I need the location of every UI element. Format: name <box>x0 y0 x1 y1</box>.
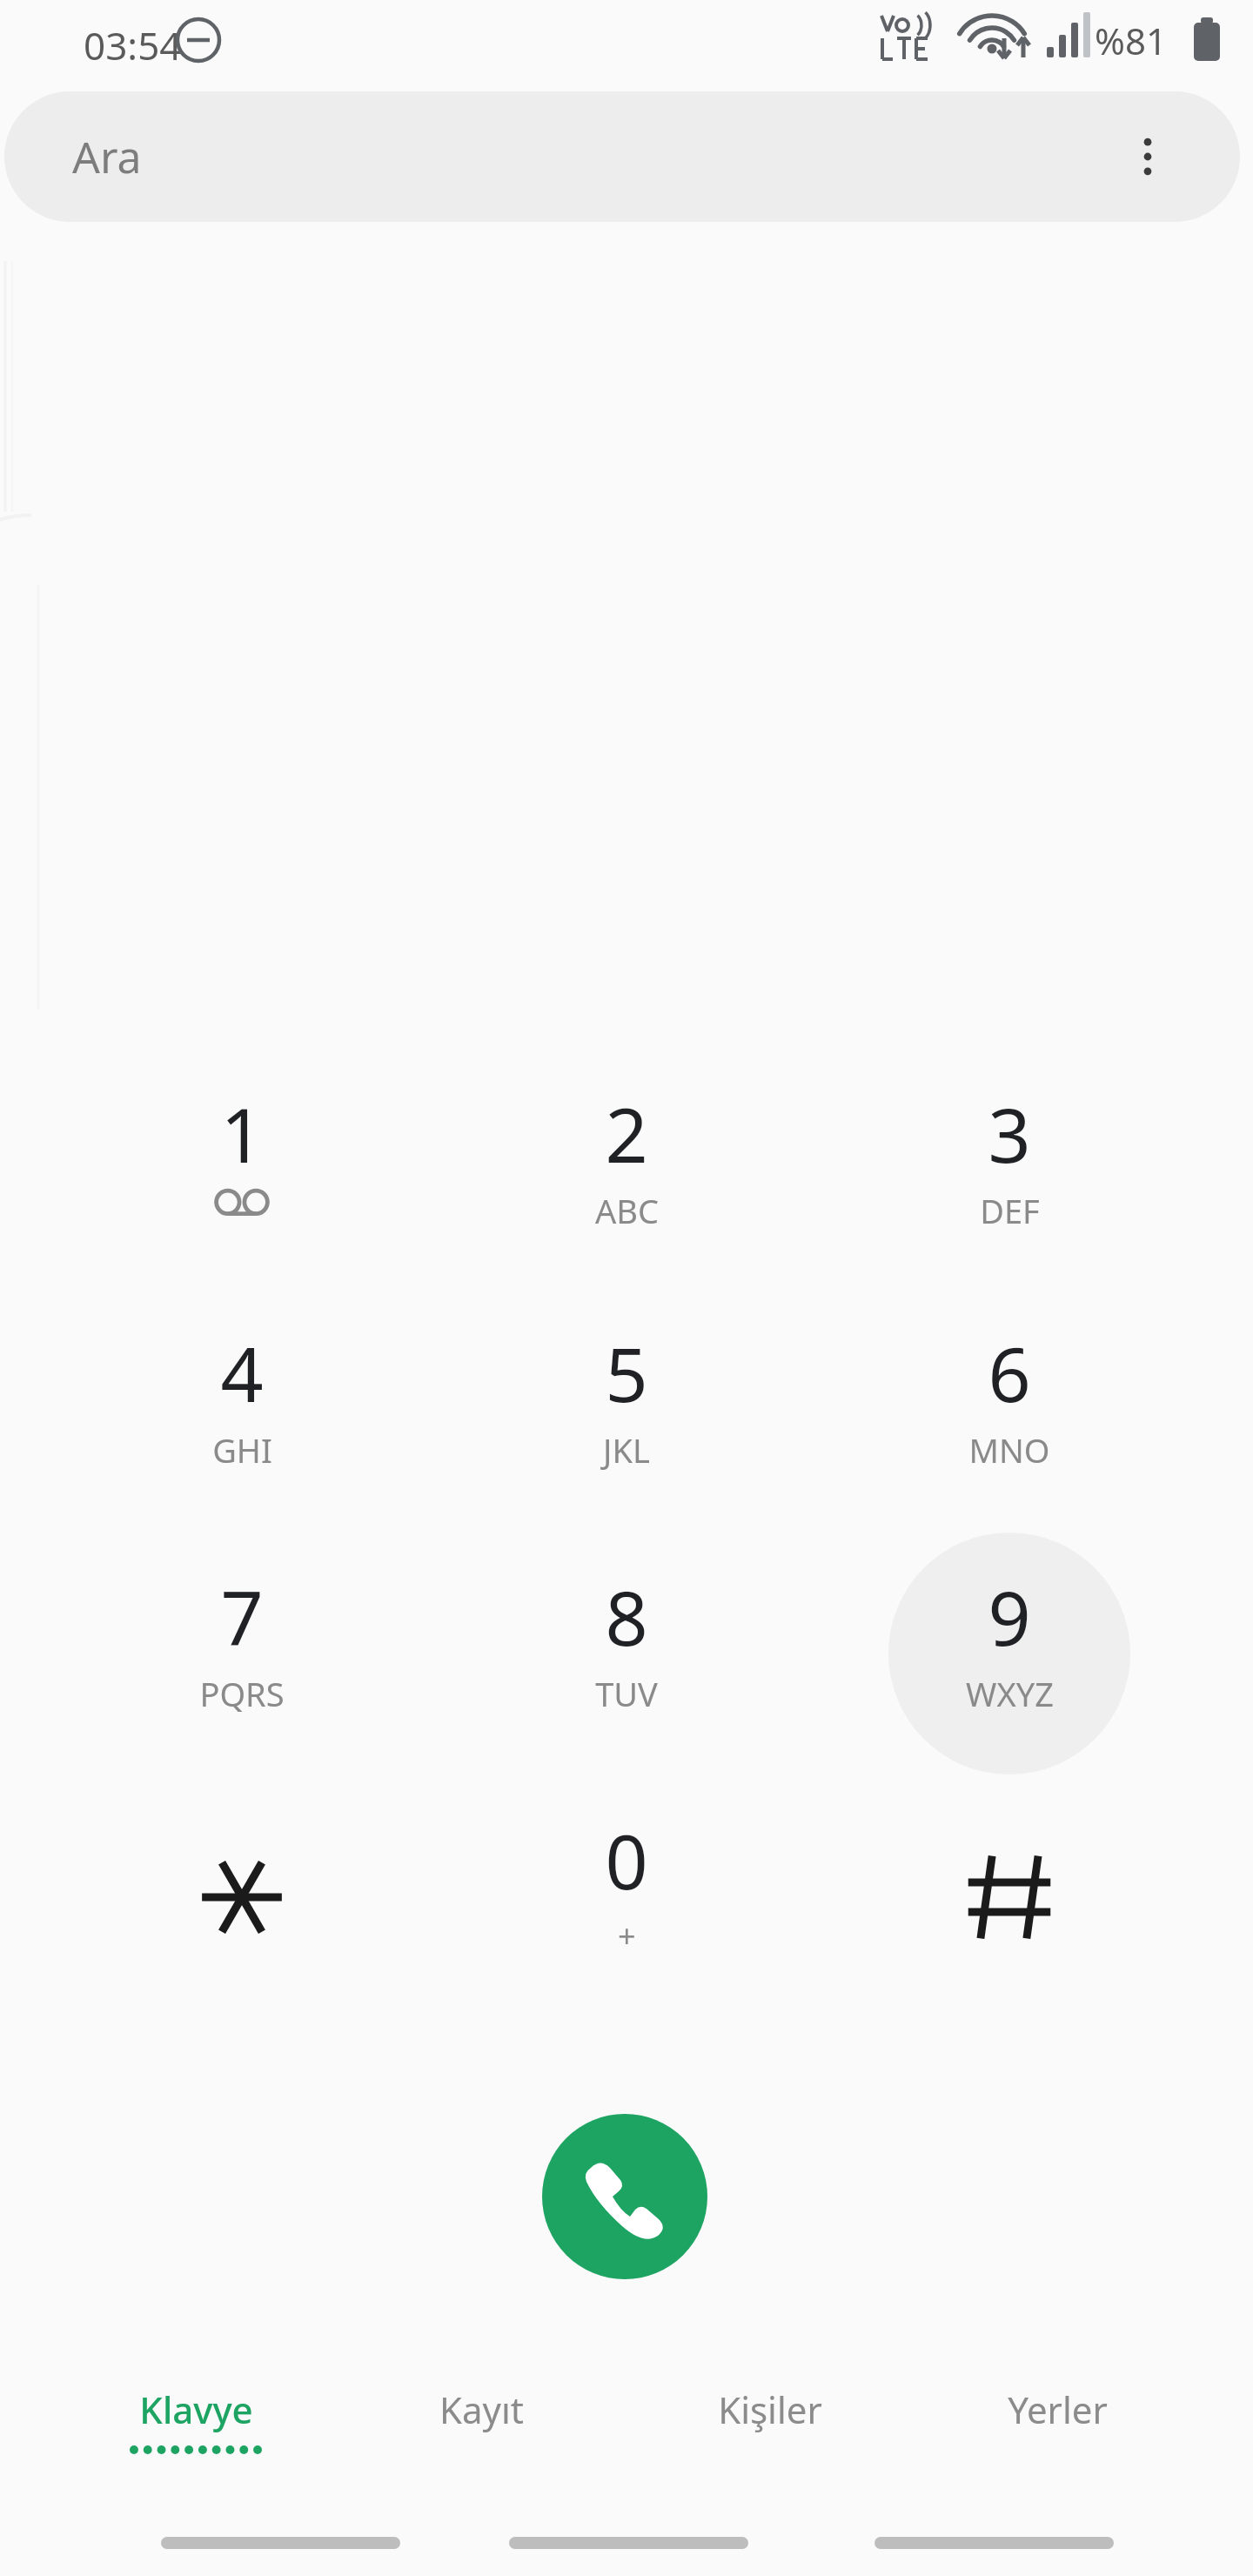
button[interactable]: 7 <box>121 1533 363 1774</box>
staticText: Kayıt <box>439 2385 524 2434</box>
button[interactable]: Klavye <box>65 2385 326 2498</box>
button[interactable]: Ara <box>4 91 1240 222</box>
staticText: 8 <box>605 1566 648 1667</box>
staticText: 9 <box>988 1566 1031 1667</box>
button[interactable]: 0 <box>506 1776 747 2018</box>
button[interactable]: 2 <box>506 1050 747 1291</box>
button[interactable]: Kişiler <box>640 2385 901 2498</box>
staticText: GHI <box>212 1427 272 1472</box>
button[interactable]: Yerler <box>927 2385 1188 2498</box>
staticText: ABC <box>595 1188 659 1233</box>
staticText: Klavye <box>139 2385 253 2434</box>
staticText: TUV <box>595 1671 658 1716</box>
staticText: 03:54 <box>84 19 182 71</box>
button[interactable]: More options <box>1106 115 1189 198</box>
button[interactable]: 4 <box>121 1289 363 1531</box>
staticText: 6 <box>988 1322 1031 1424</box>
staticText: MNO <box>968 1427 1050 1472</box>
button[interactable]: 8 <box>506 1533 747 1774</box>
button[interactable] <box>888 1776 1130 2018</box>
staticText: PQRS <box>199 1671 285 1716</box>
button[interactable]: 3 <box>888 1050 1130 1291</box>
button[interactable]: 1 <box>121 1050 363 1291</box>
staticText: Kişiler <box>718 2385 822 2434</box>
button[interactable]: Kayıt <box>351 2385 612 2498</box>
staticText: 0 <box>605 1809 648 1911</box>
staticText: 1 <box>220 1083 264 1184</box>
staticText: 5 <box>605 1322 648 1424</box>
staticText: + <box>618 1915 636 1957</box>
staticText: 3 <box>988 1083 1031 1184</box>
staticText: JKL <box>603 1427 650 1472</box>
staticText: 7 <box>220 1566 264 1667</box>
staticText: Yerler <box>1008 2385 1108 2434</box>
staticText: DEF <box>980 1188 1040 1233</box>
button[interactable]: 9 <box>888 1533 1130 1774</box>
staticText: %81 <box>1095 16 1167 65</box>
staticText: Ara <box>72 127 142 186</box>
button[interactable]: Call <box>542 2114 707 2279</box>
button[interactable]: 5 <box>506 1289 747 1531</box>
staticText: 4 <box>220 1322 264 1424</box>
button[interactable] <box>121 1776 363 2018</box>
button[interactable]: 6 <box>888 1289 1130 1531</box>
staticText: 2 <box>605 1083 648 1184</box>
staticText: WXYZ <box>966 1671 1054 1716</box>
